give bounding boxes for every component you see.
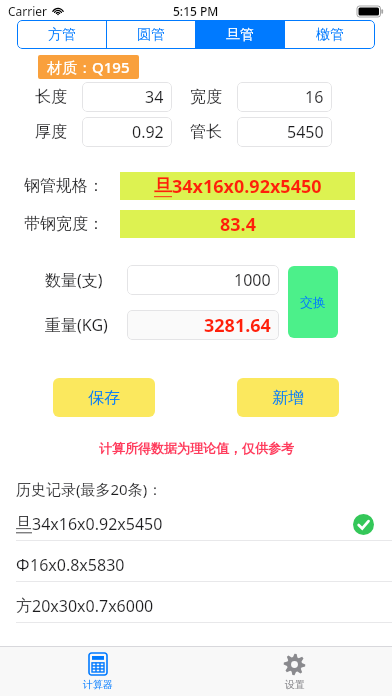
staticText: 方 bbox=[16, 596, 32, 616]
button[interactable]: 旦 bbox=[0, 507, 392, 541]
staticText: 厚度 bbox=[35, 122, 67, 142]
button[interactable]: 圆管 bbox=[106, 20, 195, 49]
staticText: 设置 bbox=[285, 678, 305, 691]
staticText: 管长 bbox=[190, 122, 222, 142]
staticText: 长度 bbox=[35, 87, 67, 107]
staticText: 16x0.8x5830 bbox=[30, 554, 125, 576]
staticText: 旦 bbox=[154, 175, 172, 198]
button[interactable]: Φ bbox=[0, 548, 392, 582]
staticText: Φ bbox=[16, 554, 30, 576]
button[interactable]: 保存 bbox=[53, 378, 155, 417]
staticText: 旦管 bbox=[226, 26, 254, 44]
button[interactable]: 0.92 bbox=[82, 117, 172, 147]
staticText: 1000 bbox=[234, 269, 271, 291]
button[interactable]: 设置 bbox=[196, 647, 392, 696]
button[interactable]: 16 bbox=[237, 82, 332, 112]
staticText: 34x16x0.92x5450 bbox=[172, 174, 322, 199]
staticText: 数量(支) bbox=[45, 269, 103, 291]
button[interactable]: 1000 bbox=[127, 265, 279, 295]
button[interactable]: 材质：Q195 bbox=[38, 55, 139, 79]
staticText: 保存 bbox=[88, 388, 120, 408]
staticText: 34x16x0.92x5450 bbox=[32, 513, 163, 535]
other: Selected bbox=[353, 514, 374, 535]
staticText: 20x30x0.7x6000 bbox=[32, 595, 154, 617]
staticText: 计算所得数据为理论值，仅供参考 bbox=[99, 440, 294, 456]
staticText: 檄管 bbox=[316, 26, 344, 44]
staticText: 圆管 bbox=[137, 26, 165, 44]
button[interactable]: 旦管 bbox=[195, 20, 285, 49]
staticText: 钢管规格： bbox=[24, 176, 104, 196]
staticText: 方管 bbox=[48, 26, 76, 44]
staticText: 3281.64 bbox=[204, 313, 271, 338]
staticText: 交换 bbox=[300, 294, 326, 310]
staticText: 0.92 bbox=[132, 121, 164, 143]
staticText: 带钢宽度： bbox=[24, 214, 104, 234]
staticText: 计算器 bbox=[83, 678, 113, 691]
staticText: 旦 bbox=[16, 514, 32, 534]
staticText: 5:15 PM bbox=[173, 3, 219, 19]
staticText: 宽度 bbox=[190, 87, 222, 107]
button[interactable]: 计算器 bbox=[0, 647, 196, 696]
button[interactable]: 5450 bbox=[237, 117, 332, 147]
button[interactable]: 檄管 bbox=[285, 20, 375, 49]
staticText: 重量(KG) bbox=[45, 314, 108, 336]
staticText: Carrier bbox=[8, 3, 48, 19]
button[interactable]: 3281.64 bbox=[127, 310, 279, 340]
staticText: 新增 bbox=[272, 388, 304, 408]
staticText: 16 bbox=[305, 86, 324, 108]
button[interactable]: 34 bbox=[82, 82, 172, 112]
button[interactable]: 交换 bbox=[288, 266, 338, 338]
staticText: 5450 bbox=[287, 121, 324, 143]
staticText: 83.4 bbox=[220, 212, 256, 237]
staticText: 34 bbox=[145, 86, 164, 108]
staticText: 材质：Q195 bbox=[47, 57, 130, 77]
button[interactable]: 方 bbox=[0, 589, 392, 623]
button[interactable]: 新增 bbox=[237, 378, 339, 417]
staticText: 历史记录(最多20条)： bbox=[16, 479, 163, 499]
button[interactable]: 方管 bbox=[17, 20, 106, 49]
